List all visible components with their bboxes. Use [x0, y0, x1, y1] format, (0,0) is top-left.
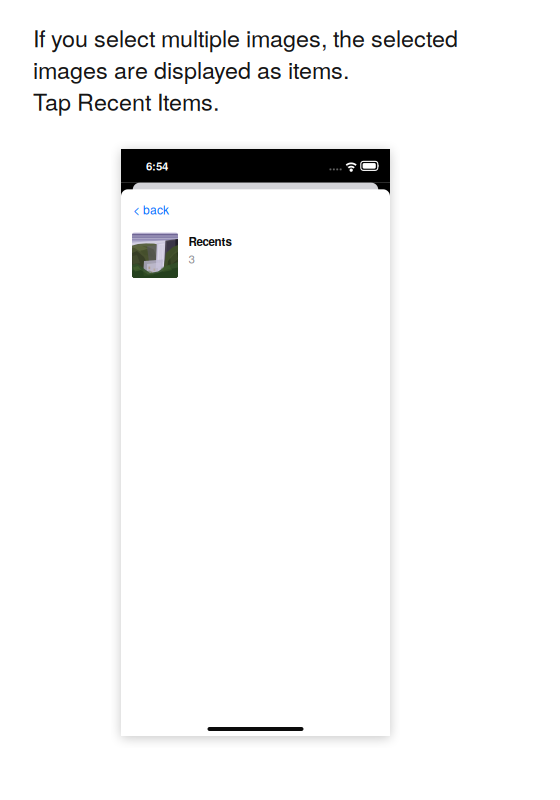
staticText: Tap Recent Items.	[33, 84, 219, 117]
staticText: images are displayed as items.	[33, 52, 349, 86]
button[interactable]: < back	[121, 196, 183, 223]
staticText: Recents	[188, 233, 231, 250]
button[interactable]: Recents	[121, 228, 390, 282]
staticText: < back	[133, 201, 169, 218]
staticText: If you select multiple images, the selec…	[33, 20, 458, 54]
staticText: 3	[188, 250, 194, 267]
staticText: 6:54	[146, 158, 168, 174]
